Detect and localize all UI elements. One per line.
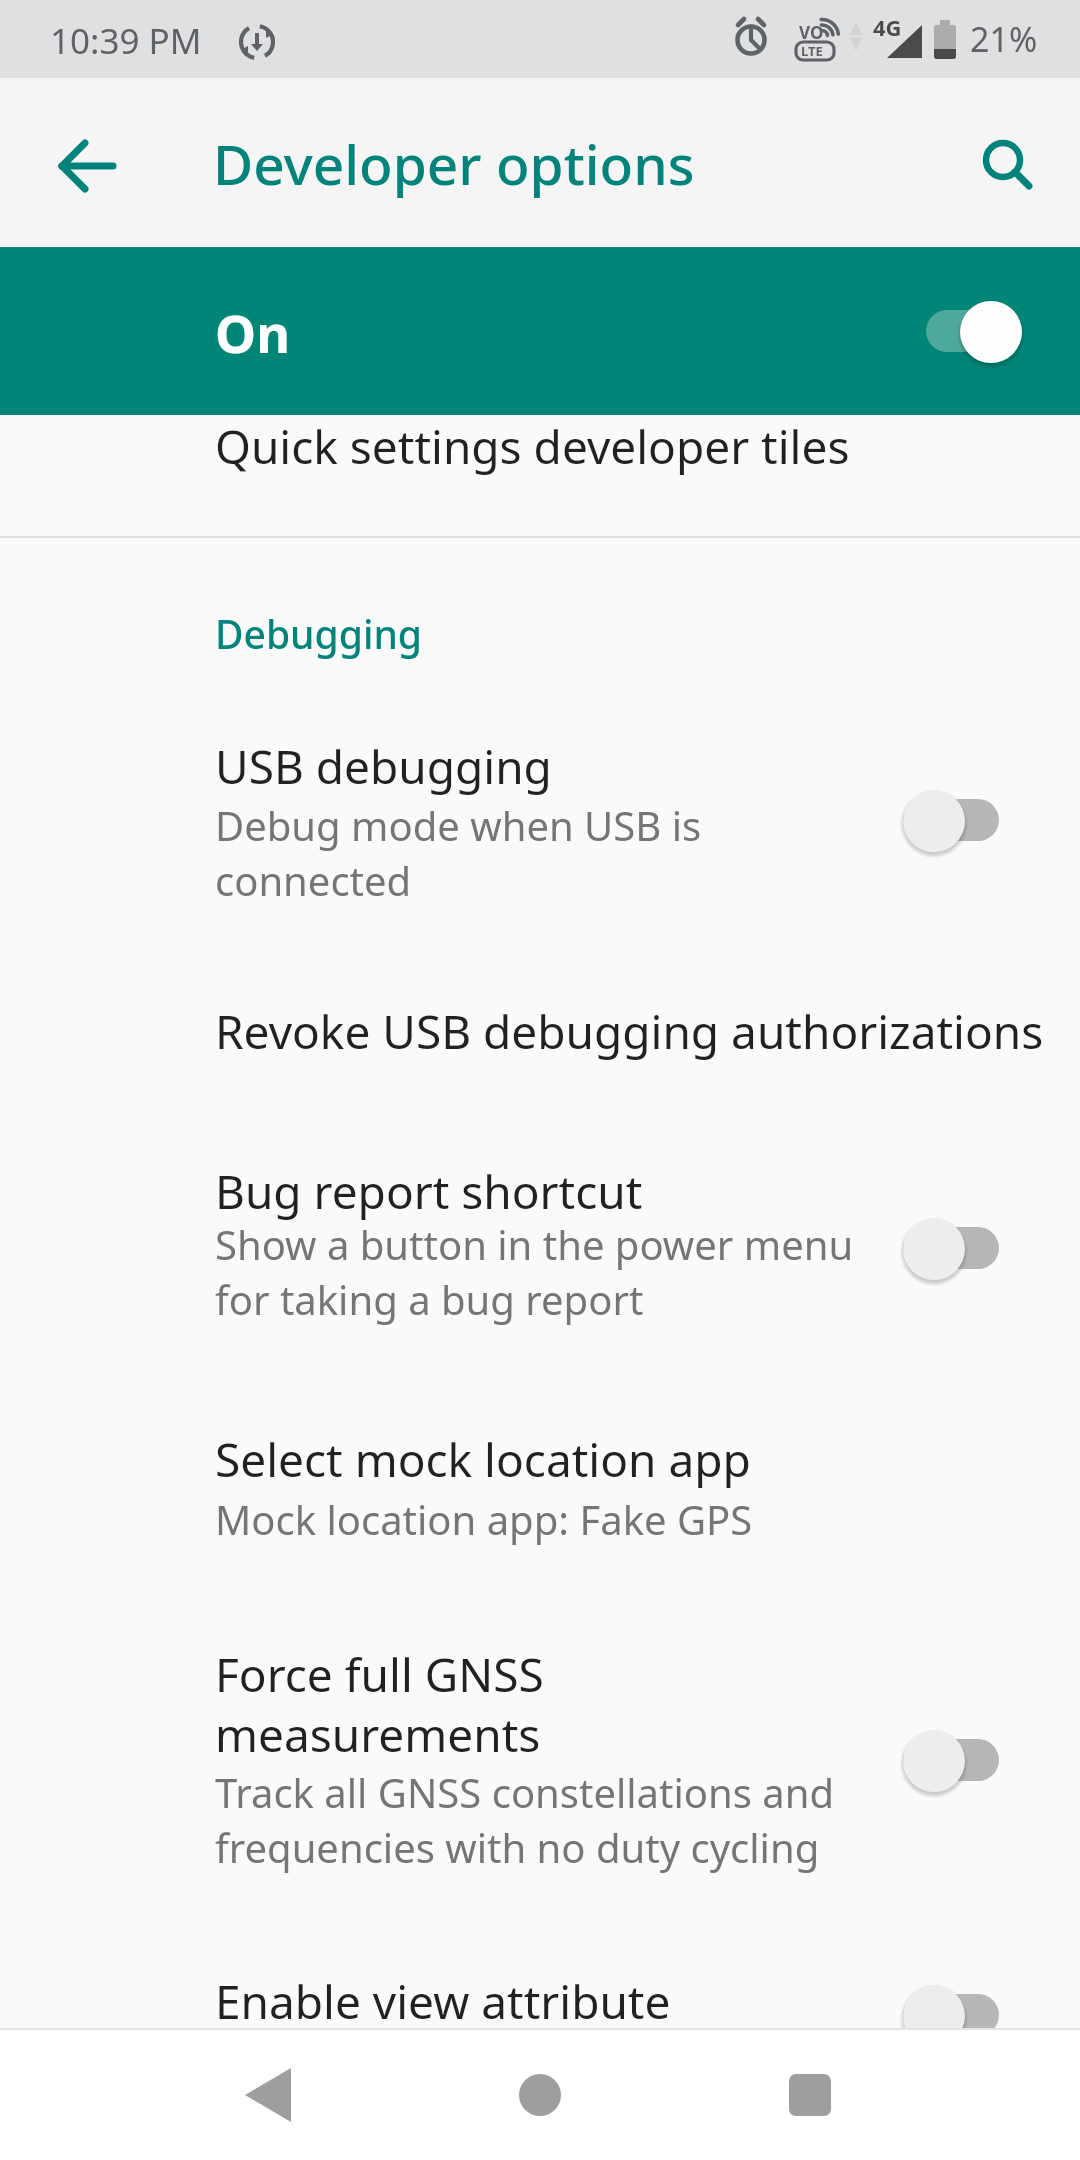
staticText: Enable view attribute — [215, 1970, 671, 2033]
staticText: Debugging — [215, 607, 423, 660]
button[interactable] — [0, 1405, 1080, 1585]
staticText: Select mock location app — [215, 1428, 751, 1491]
button[interactable] — [0, 975, 1080, 1095]
staticText: for taking a bug report — [215, 1272, 644, 1326]
staticText: Bug report shortcut — [215, 1160, 643, 1223]
staticText: Show a button in the power menu — [215, 1217, 854, 1271]
button[interactable] — [0, 247, 1080, 415]
staticText: Quick settings developer tiles — [215, 415, 850, 478]
staticText: USB debugging — [215, 735, 552, 798]
staticText: Track all GNSS constellations and — [215, 1765, 835, 1819]
staticText: 10:39 PM — [50, 17, 202, 65]
staticText: Force full GNSS — [215, 1643, 544, 1706]
button[interactable] — [0, 1135, 1080, 1365]
staticText: LTE — [801, 42, 823, 60]
staticText: Developer options — [213, 126, 695, 201]
staticText: 21% — [970, 16, 1038, 62]
button[interactable] — [475, 2030, 605, 2160]
staticText: frequencies with no duty cycling — [215, 1820, 820, 1874]
button[interactable] — [0, 1620, 1080, 1910]
button[interactable] — [963, 120, 1053, 210]
staticText: Revoke USB debugging authorizations — [215, 1000, 1044, 1063]
staticText: VO — [799, 21, 824, 44]
button[interactable] — [0, 1940, 1080, 2030]
staticText: connected — [215, 853, 412, 907]
staticText: Mock location app: Fake GPS — [215, 1492, 753, 1546]
staticText: 4G — [873, 12, 902, 42]
staticText: On — [215, 297, 290, 368]
button[interactable] — [40, 120, 130, 210]
button[interactable] — [202, 2030, 332, 2160]
staticText: Debug mode when USB is — [215, 798, 702, 852]
staticText: measurements — [215, 1703, 541, 1766]
button[interactable] — [0, 415, 1080, 537]
button[interactable] — [745, 2030, 875, 2160]
button[interactable] — [0, 710, 1080, 940]
